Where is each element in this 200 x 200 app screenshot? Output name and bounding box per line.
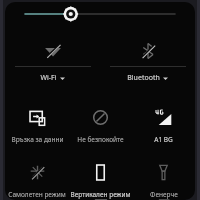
staticText: Вертикален режим <box>70 190 131 199</box>
button[interactable]: Bluetooth <box>100 40 195 88</box>
staticText: Wi-Fi <box>40 73 57 83</box>
button[interactable]: Do not disturb <box>69 104 132 151</box>
staticText: Връзка за данни <box>11 135 64 144</box>
button[interactable]: Flashlight <box>132 159 195 200</box>
button[interactable]: Wi-Fi <box>5 40 100 88</box>
button[interactable]: Mobile network <box>132 104 195 151</box>
button[interactable]: Brightness <box>5 2 195 26</box>
staticText: Не безпокойте <box>77 135 124 144</box>
staticText: Bluetooth <box>127 73 160 83</box>
staticText: Самолетен режим <box>8 190 66 199</box>
button[interactable]: Data connection <box>5 104 69 151</box>
staticText: Фенерче <box>150 190 178 199</box>
button[interactable]: Airplane mode <box>5 159 69 200</box>
staticText: A1 BG <box>154 135 173 144</box>
button[interactable]: Portrait orientation <box>69 159 132 200</box>
